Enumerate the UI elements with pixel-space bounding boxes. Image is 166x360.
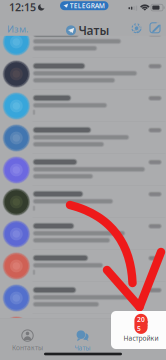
button[interactable] xyxy=(0,218,166,250)
button[interactable] xyxy=(0,282,166,314)
staticText: Чаты xyxy=(74,343,90,352)
button[interactable] xyxy=(0,186,166,218)
staticText: 205 xyxy=(137,315,145,333)
button[interactable]: Чаты xyxy=(55,329,110,353)
staticText: TELEGRAM xyxy=(70,1,105,10)
staticText: Контакты xyxy=(12,343,43,352)
button[interactable] xyxy=(0,26,166,58)
staticText: 12:15 xyxy=(9,0,36,14)
button[interactable]: Stories xyxy=(128,20,145,37)
button[interactable] xyxy=(0,154,166,186)
button[interactable] xyxy=(0,314,166,346)
button[interactable] xyxy=(0,250,166,282)
button[interactable]: 205 xyxy=(111,311,166,349)
button[interactable] xyxy=(0,90,166,122)
button[interactable] xyxy=(0,122,166,154)
button[interactable]: Контакты xyxy=(0,329,55,353)
button[interactable]: Изм. xyxy=(0,18,35,40)
button[interactable]: New message xyxy=(147,20,164,37)
staticText: Чаты xyxy=(78,22,109,38)
button[interactable] xyxy=(0,58,166,90)
staticText: Изм. xyxy=(7,23,29,35)
staticText: Настройки xyxy=(123,334,158,343)
